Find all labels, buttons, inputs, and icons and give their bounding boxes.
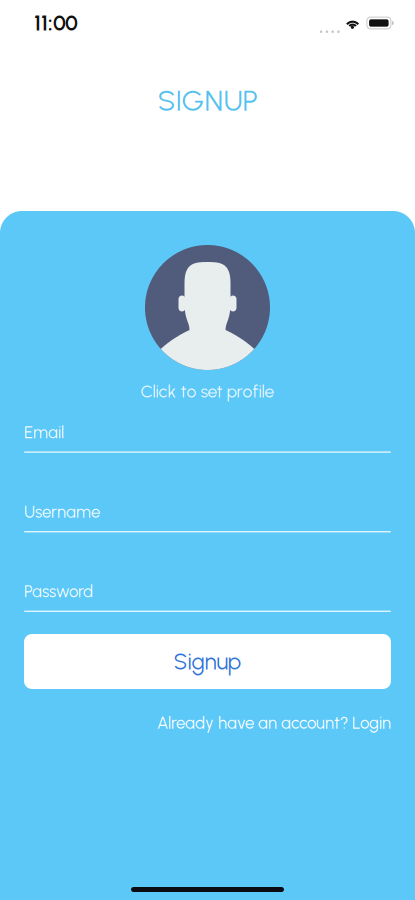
- staticText: Already have an account? Login: [157, 713, 391, 733]
- staticText: Password: [24, 581, 93, 601]
- staticText: Click to set profile: [140, 381, 274, 402]
- staticText: Signup: [173, 648, 241, 675]
- button[interactable]: Signup: [24, 634, 391, 689]
- staticText: 11:00: [34, 10, 78, 36]
- staticText: Username: [24, 502, 100, 522]
- staticText: SIGNUP: [157, 83, 257, 118]
- button[interactable]: Already have an account? Login: [24, 713, 391, 733]
- staticText: Email: [24, 422, 64, 442]
- button[interactable]: Click to set profile: [140, 245, 274, 402]
